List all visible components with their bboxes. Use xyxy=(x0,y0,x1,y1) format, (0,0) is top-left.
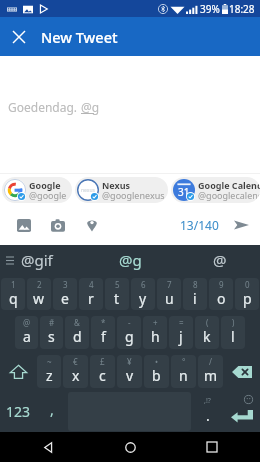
staticText: u xyxy=(165,289,174,308)
staticText: d xyxy=(73,327,82,346)
button[interactable]: Add photo xyxy=(7,211,41,239)
button[interactable]: # xyxy=(40,316,63,349)
staticText: 3 xyxy=(63,279,68,290)
staticText: / xyxy=(209,356,212,367)
button[interactable]: ,!? xyxy=(192,391,223,432)
button[interactable]: ) xyxy=(221,316,245,349)
button[interactable]: 5 xyxy=(105,278,129,310)
staticText: @googlecalenda xyxy=(198,189,260,201)
button[interactable]: ¥ xyxy=(117,355,142,388)
staticText: ° xyxy=(182,356,186,367)
button[interactable]: 7 xyxy=(157,278,181,310)
staticText: = xyxy=(179,317,184,328)
button[interactable]: Google xyxy=(2,177,72,203)
button[interactable]: nexus xyxy=(75,177,168,203)
button[interactable]: Menu xyxy=(1,251,19,269)
button[interactable]: @ xyxy=(15,316,38,349)
button[interactable]: 2 xyxy=(27,278,51,310)
staticText: * xyxy=(101,317,106,328)
button[interactable]: Enter xyxy=(223,391,260,432)
staticText: 2 xyxy=(37,279,42,290)
staticText: & xyxy=(74,317,80,328)
button[interactable]: @g xyxy=(60,245,200,275)
button[interactable]: 6 xyxy=(131,278,155,310)
staticText: j xyxy=(179,327,183,346)
button[interactable]: 9 xyxy=(209,278,233,310)
button[interactable]: 4 xyxy=(79,278,103,310)
button[interactable]: + xyxy=(143,316,167,349)
staticText: t xyxy=(114,289,120,308)
button[interactable]: & xyxy=(65,316,89,349)
staticText: w xyxy=(33,289,45,308)
staticText: ( xyxy=(206,317,209,328)
staticText: # xyxy=(49,317,55,328)
staticText: 6 xyxy=(141,279,146,290)
staticText: Google xyxy=(29,179,61,191)
staticText: 9 xyxy=(219,279,224,290)
button[interactable]: Shift xyxy=(0,352,36,391)
button[interactable]: Send xyxy=(229,213,253,237)
button[interactable]: ( xyxy=(195,316,219,349)
staticText: nexus xyxy=(81,187,95,194)
button[interactable]: - xyxy=(117,316,141,349)
staticText: 123 xyxy=(6,402,31,421)
button[interactable]: * xyxy=(91,316,115,349)
button[interactable]: £ xyxy=(90,355,115,388)
staticText: , xyxy=(50,400,54,419)
staticText: 18:28 xyxy=(229,2,255,16)
staticText: s xyxy=(48,327,55,346)
button[interactable]: 8 xyxy=(183,278,207,310)
button[interactable]: Recents xyxy=(198,433,226,461)
button[interactable]: € xyxy=(63,355,88,388)
button[interactable]: 0 xyxy=(235,278,259,310)
staticText: @google xyxy=(29,189,67,201)
staticText: n xyxy=(179,366,188,385)
staticText: r xyxy=(88,289,94,308)
button[interactable]: 1 xyxy=(1,278,25,310)
button[interactable]: 123 xyxy=(0,391,36,432)
staticText: l xyxy=(231,327,235,346)
button[interactable]: Location xyxy=(75,211,109,239)
button[interactable]: = xyxy=(169,316,193,349)
staticText: € xyxy=(73,356,78,367)
staticText: 0 xyxy=(245,279,250,290)
staticText: New Tweet xyxy=(41,27,118,47)
staticText: 31 xyxy=(178,185,190,199)
staticText: h xyxy=(151,327,160,346)
button[interactable]: , xyxy=(36,391,67,432)
staticText: • xyxy=(155,356,159,367)
button[interactable]: @gif xyxy=(14,245,60,275)
staticText: a xyxy=(23,327,31,346)
button[interactable]: ~ xyxy=(37,355,61,388)
staticText: . xyxy=(206,406,210,425)
staticText: i xyxy=(193,289,197,308)
staticText: 5 xyxy=(115,279,120,290)
staticText: q xyxy=(9,289,18,308)
staticText: @ xyxy=(23,317,31,328)
button[interactable]: 3 xyxy=(53,278,77,310)
button[interactable]: 13/140 xyxy=(178,217,221,233)
button[interactable]: Camera xyxy=(41,211,75,239)
staticText: ) xyxy=(232,317,235,328)
button[interactable]: 31 xyxy=(171,177,260,203)
staticText: ,!? xyxy=(204,396,211,406)
button[interactable]: Backspace xyxy=(224,352,260,391)
button[interactable]: Close xyxy=(0,18,38,56)
staticText: @gif xyxy=(21,250,53,270)
staticText: 39% xyxy=(200,2,220,16)
button[interactable]: Home xyxy=(116,433,144,461)
button[interactable]: • xyxy=(144,355,169,388)
staticText: @ xyxy=(213,250,227,270)
staticText: b xyxy=(152,366,161,385)
staticText: z xyxy=(46,366,53,385)
button[interactable]: ° xyxy=(171,355,196,388)
staticText: ~ xyxy=(47,356,52,367)
staticText: @g xyxy=(119,250,142,270)
staticText: ¥ xyxy=(127,356,132,367)
button[interactable]: / xyxy=(198,355,223,388)
button[interactable]: @ xyxy=(200,245,260,275)
button[interactable]: Back xyxy=(34,433,62,461)
staticText: 1 xyxy=(11,279,16,290)
staticText: k xyxy=(203,327,211,346)
